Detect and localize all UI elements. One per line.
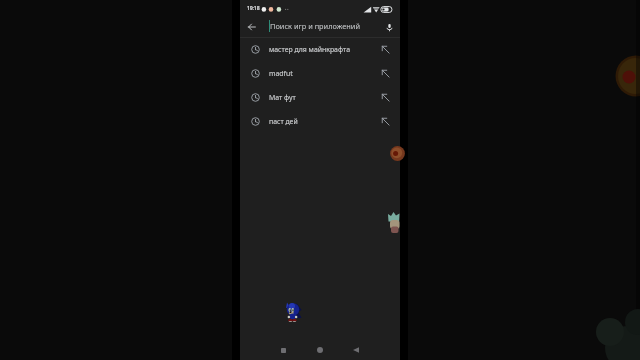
button[interactable]: Voice search xyxy=(381,19,397,35)
button[interactable]: Recents xyxy=(273,340,293,360)
staticText: 19:18 xyxy=(247,5,260,12)
staticText: Мат фут xyxy=(269,93,296,102)
staticText: паст дей xyxy=(269,117,298,126)
button[interactable]: Home xyxy=(310,340,330,360)
button[interactable]: Мат фут xyxy=(240,85,400,109)
button[interactable]: madfut xyxy=(240,61,400,85)
staticText: Поиск игр и приложений xyxy=(270,21,361,31)
button[interactable]: мастер для майнкрафта xyxy=(240,37,400,61)
button[interactable]: Back xyxy=(244,19,260,35)
staticText: мастер для майнкрафта xyxy=(269,45,350,54)
staticText: madfut xyxy=(269,69,293,78)
button[interactable]: паст дей xyxy=(240,109,400,133)
button[interactable]: Back xyxy=(346,340,366,360)
